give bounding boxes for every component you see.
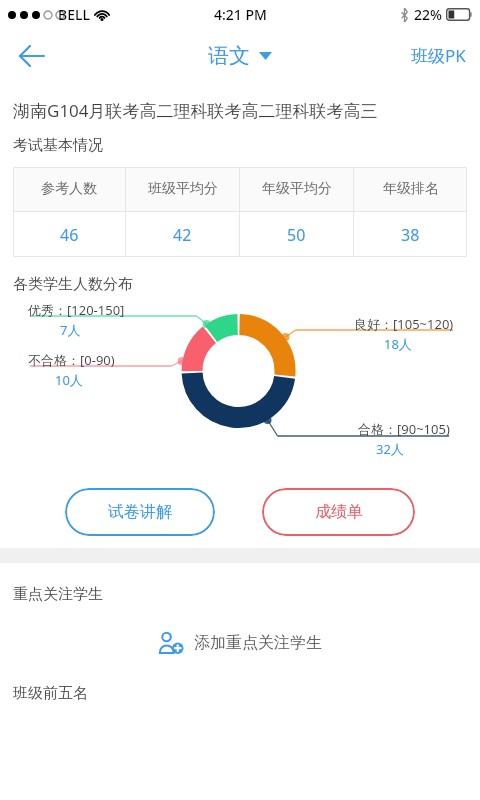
staticText: 7人	[60, 321, 81, 339]
staticText: 语文	[208, 43, 250, 69]
button[interactable]: 添加重点关注学生	[148, 624, 332, 662]
staticText: 42	[173, 224, 192, 246]
staticText: 班级平均分	[148, 180, 218, 198]
staticText: 46	[60, 224, 79, 246]
staticText: BELL	[58, 5, 90, 24]
staticText: 添加重点关注学生	[194, 633, 322, 653]
staticText: 班级前五名	[13, 684, 88, 703]
staticText: 优秀：[120-150]	[28, 301, 125, 319]
staticText: 不合格：[0-90)	[28, 351, 115, 369]
button[interactable]: Back	[0, 28, 62, 83]
staticText: 重点关注学生	[13, 585, 103, 604]
staticText: 50	[287, 224, 306, 246]
staticText: 4:21 PM	[214, 5, 267, 24]
staticText: 各类学生人数分布	[13, 275, 133, 294]
staticText: 22%	[414, 5, 442, 24]
staticText: 年级平均分	[262, 180, 332, 198]
staticText: 年级排名	[383, 180, 439, 198]
staticText: 试卷讲解	[108, 502, 172, 522]
button[interactable]: 试卷讲解	[65, 488, 215, 536]
staticText: 32人	[376, 440, 404, 458]
staticText: 良好：[105~120)	[354, 315, 454, 333]
staticText: 18人	[384, 335, 412, 353]
staticText: 10人	[55, 371, 83, 389]
staticText: 成绩单	[315, 502, 363, 522]
staticText: 湖南G104月联考高二理科联考高二理科联考高三	[13, 99, 378, 122]
staticText: 合格：[90~105)	[358, 420, 450, 438]
button[interactable]: 成绩单	[262, 488, 415, 536]
staticText: 38	[401, 224, 420, 246]
staticText: 班级PK	[411, 44, 466, 67]
staticText: 参考人数	[41, 180, 97, 198]
button[interactable]: 班级PK	[397, 28, 480, 83]
staticText: 考试基本情况	[13, 136, 103, 155]
button[interactable]: 语文	[202, 37, 278, 75]
